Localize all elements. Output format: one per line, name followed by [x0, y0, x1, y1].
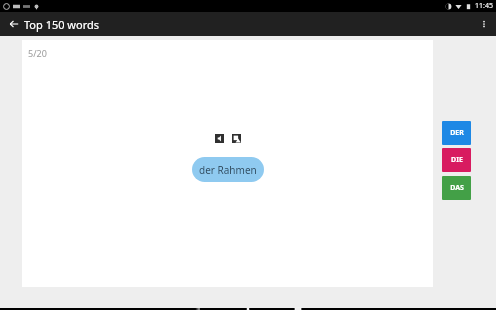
button[interactable]: Back	[6, 16, 22, 32]
button[interactable]: Back	[189, 308, 207, 310]
staticText: Top 150 words	[24, 17, 100, 32]
button[interactable]: DIE	[442, 148, 471, 172]
button[interactable]: DER	[442, 121, 471, 145]
button[interactable]: Recent apps	[289, 308, 307, 310]
staticText: DIE	[451, 155, 463, 165]
button[interactable]: der Rahmen	[192, 157, 264, 182]
staticText: 11:45	[475, 1, 493, 11]
staticText: der Rahmen	[199, 163, 257, 177]
button[interactable]: More options	[475, 15, 493, 33]
button[interactable]: DAS	[442, 176, 471, 200]
staticText: DER	[450, 128, 464, 138]
staticText: DAS	[450, 183, 464, 193]
button[interactable]: Show image	[232, 134, 241, 143]
button[interactable]: Home	[239, 308, 257, 310]
button[interactable]: Play pronunciation	[215, 134, 224, 143]
staticText: 5/20	[28, 47, 47, 59]
